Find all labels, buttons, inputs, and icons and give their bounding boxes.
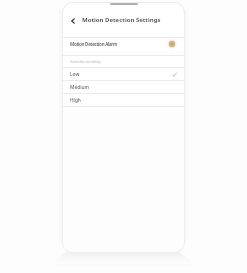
button[interactable]: Motion Detection Alarm	[63, 38, 184, 55]
staticText: Motion Detection Alarm	[70, 41, 118, 47]
staticText: Motion Detection Settings	[82, 16, 161, 24]
staticText: Select the sensitivity	[70, 59, 101, 65]
button[interactable]: Medium	[63, 81, 184, 93]
button[interactable]: Back	[67, 15, 78, 26]
button[interactable]: High	[63, 94, 184, 106]
staticText: Medium	[70, 84, 89, 91]
staticText: Low	[70, 71, 80, 78]
button[interactable]: Low	[63, 68, 184, 80]
staticText: High	[70, 97, 81, 104]
